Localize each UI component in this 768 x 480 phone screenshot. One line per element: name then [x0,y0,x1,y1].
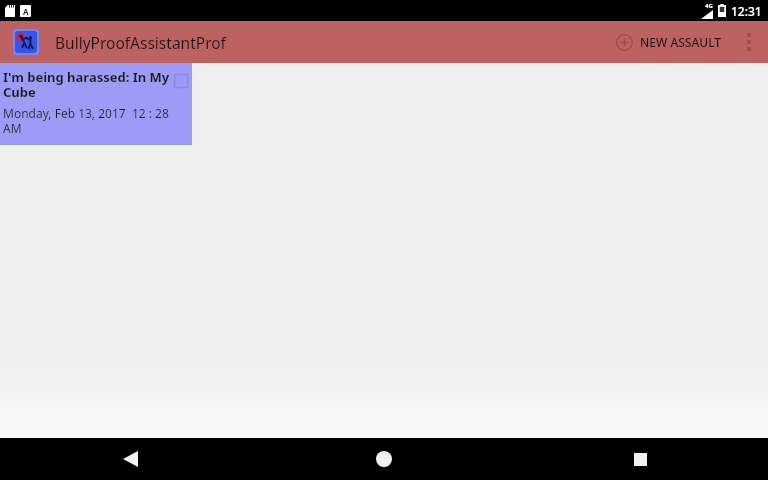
staticText: A [23,6,29,17]
button[interactable]: App icon [15,31,37,53]
button[interactable]: Recent apps [512,438,768,480]
other: Add [616,34,633,51]
staticText: 4G [705,2,713,10]
button[interactable]: Back [0,438,256,480]
button[interactable]: More options [736,21,762,63]
staticText: NEW ASSAULT [640,34,722,50]
staticText: BullyProofAssistantProf [55,32,226,53]
staticText: I'm being harassed: In My Cube [3,68,172,101]
staticText: Monday, Feb 13, 2017 12 : 28 AM [3,105,172,136]
button[interactable]: I'm being harassed: In My Cube [0,63,192,145]
button[interactable]: Add [608,21,730,63]
button[interactable]: Home [256,438,512,480]
button[interactable]: Select assault [174,74,188,88]
staticText: 12:31 [731,3,762,19]
